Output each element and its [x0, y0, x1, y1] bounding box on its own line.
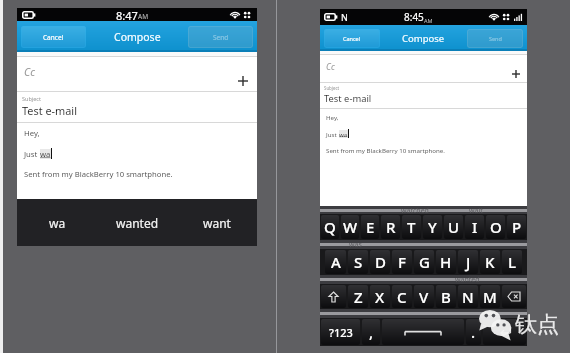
button[interactable]: S: [348, 250, 368, 274]
staticText: Subject: [22, 95, 41, 102]
staticText: X: [375, 287, 385, 307]
staticText: Hey,: [326, 113, 339, 121]
staticText: ?123: [329, 325, 353, 340]
staticText: Send: [489, 35, 502, 42]
staticText: N: [341, 11, 348, 23]
button[interactable]: M: [480, 285, 500, 308]
staticText: W: [343, 217, 358, 237]
staticText: Cancel: [343, 35, 361, 42]
button[interactable]: wanted: [97, 199, 177, 246]
button[interactable]: Subject: [22, 95, 257, 122]
staticText: Just: [326, 130, 339, 138]
staticText: watched: [401, 206, 429, 214]
button[interactable]: Cancel: [21, 26, 86, 48]
button[interactable]: Send: [188, 26, 253, 48]
staticText: D: [375, 252, 386, 272]
staticText: Send: [213, 33, 229, 42]
staticText: R: [386, 217, 396, 237]
staticText: Y: [428, 217, 437, 237]
button[interactable]: ,: [362, 319, 380, 345]
staticText: N: [462, 287, 474, 307]
staticText: Compose: [402, 32, 445, 45]
staticText: .: [471, 322, 476, 342]
button[interactable]: Y: [423, 215, 442, 239]
button[interactable]: B: [436, 285, 456, 308]
button[interactable]: G: [414, 250, 434, 274]
button[interactable]: K: [480, 250, 500, 274]
staticText: Q: [324, 217, 336, 237]
staticText: H: [440, 252, 452, 272]
staticText: Hey,: [24, 128, 40, 138]
button[interactable]: Cancel: [324, 29, 380, 48]
staticText: O: [490, 217, 502, 237]
staticText: A: [331, 252, 341, 272]
staticText: Test e-mail: [22, 103, 77, 118]
button[interactable]: N: [458, 285, 478, 308]
staticText: 8:47: [116, 8, 138, 21]
button[interactable]: I: [465, 215, 484, 239]
staticText: Cc: [24, 65, 35, 79]
staticText: 8:45: [404, 10, 424, 24]
button[interactable]: A: [325, 250, 346, 274]
button[interactable]: X: [370, 285, 390, 308]
button[interactable]: Cc: [320, 55, 527, 82]
staticText: M: [483, 287, 497, 307]
button[interactable]: Enter: [483, 319, 526, 345]
button[interactable]: Backspace: [502, 285, 526, 308]
button[interactable]: H: [436, 250, 456, 274]
staticText: G: [419, 252, 430, 272]
button[interactable]: E: [361, 215, 379, 239]
staticText: AM: [138, 12, 149, 21]
staticText: E: [366, 217, 375, 237]
staticText: V: [419, 287, 429, 307]
button[interactable]: Add recipient: [235, 73, 251, 89]
staticText: Compose: [114, 30, 161, 44]
staticText: Z: [354, 287, 363, 307]
staticText: P: [512, 217, 522, 237]
staticText: Test e-mail: [324, 92, 372, 105]
button[interactable]: R: [381, 215, 400, 239]
staticText: 钛点: [515, 311, 559, 339]
button[interactable]: wa: [17, 199, 97, 246]
staticText: Just: [24, 149, 40, 159]
staticText: K: [485, 252, 495, 272]
staticText: U: [448, 217, 460, 237]
button[interactable]: Add recipient: [509, 67, 522, 80]
button[interactable]: Space: [382, 319, 464, 345]
staticText: wa: [40, 149, 51, 159]
button[interactable]: .: [466, 319, 481, 345]
button[interactable]: Hey,: [326, 113, 527, 206]
button[interactable]: J: [458, 250, 478, 274]
staticText: S: [354, 252, 363, 272]
button[interactable]: Q: [321, 215, 339, 239]
button[interactable]: D: [370, 250, 390, 274]
button[interactable]: W: [341, 215, 359, 239]
button[interactable]: V: [414, 285, 434, 308]
button[interactable]: O: [486, 215, 505, 239]
staticText: wanted: [455, 275, 480, 284]
button[interactable]: Hey,: [24, 128, 257, 199]
button[interactable]: T: [402, 215, 421, 239]
staticText: T: [407, 217, 416, 237]
staticText: I: [472, 217, 478, 237]
button[interactable]: U: [444, 215, 463, 239]
staticText: wa: [49, 215, 66, 231]
staticText: C: [397, 287, 407, 307]
button[interactable]: P: [507, 215, 526, 239]
button[interactable]: Subject: [324, 85, 527, 108]
button[interactable]: Z: [348, 285, 368, 308]
staticText: F: [398, 252, 406, 272]
button[interactable]: F: [392, 250, 412, 274]
button[interactable]: L: [502, 250, 522, 274]
button[interactable]: ?123: [321, 319, 360, 345]
staticText: wait: [469, 206, 483, 214]
staticText: L: [508, 252, 517, 272]
button[interactable]: Shift: [321, 285, 346, 308]
staticText: wa: [339, 130, 348, 138]
button[interactable]: want: [177, 199, 257, 246]
button[interactable]: C: [392, 285, 412, 308]
staticText: Cc: [326, 61, 335, 72]
staticText: AM: [424, 17, 433, 24]
button[interactable]: Send: [467, 29, 523, 48]
button[interactable]: Cc: [17, 57, 257, 91]
